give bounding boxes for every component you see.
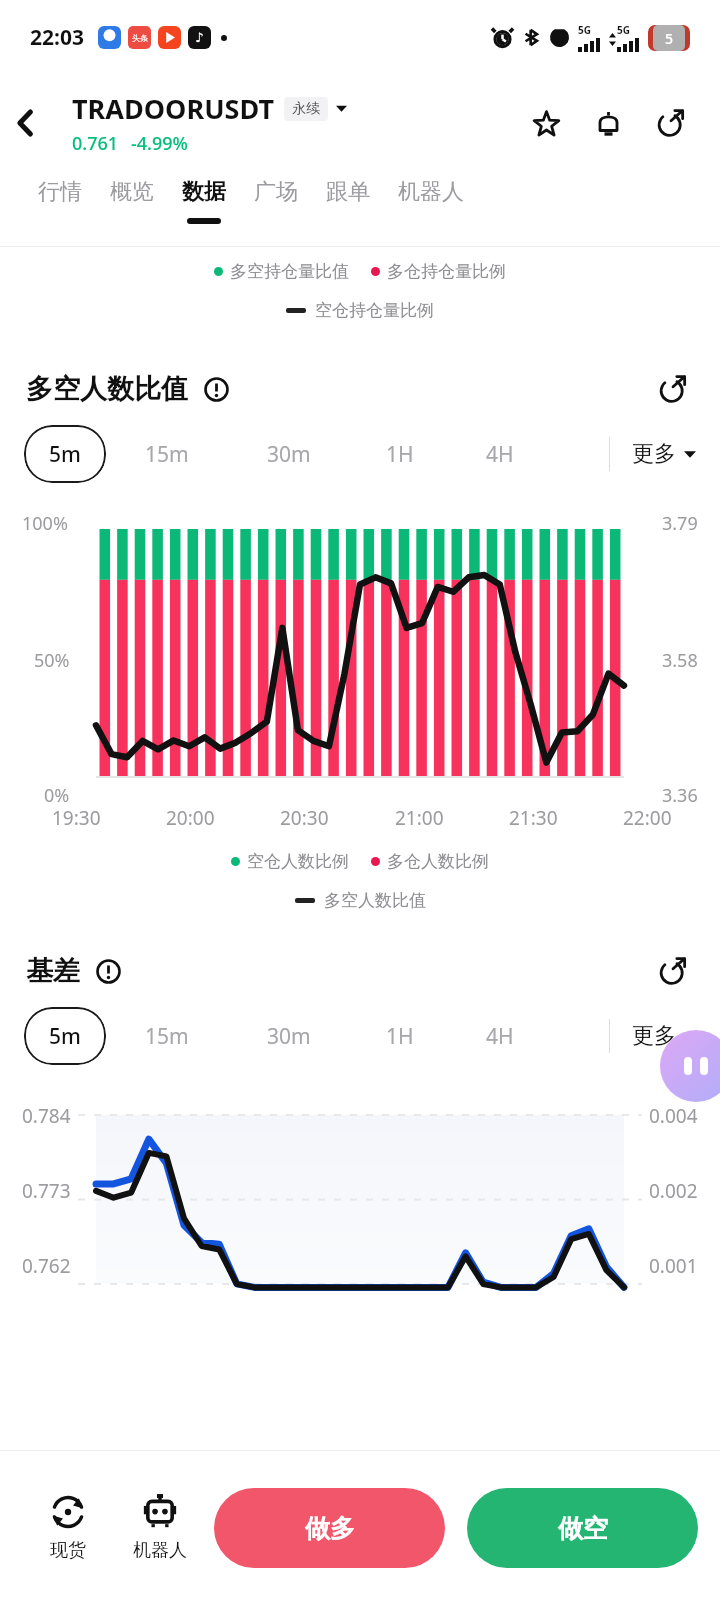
button[interactable]: 更多 (610, 1022, 696, 1050)
button[interactable]: 做空 (467, 1488, 698, 1568)
button[interactable]: 4H (450, 1007, 550, 1065)
button[interactable]: Share (646, 99, 694, 147)
button[interactable]: 数据 (168, 178, 240, 224)
button[interactable]: Assistant (660, 1030, 720, 1102)
button[interactable]: 概览 (96, 178, 168, 218)
staticText: 5m (49, 1022, 81, 1051)
button[interactable]: Info (200, 373, 232, 405)
staticText: 更多 (632, 440, 676, 468)
staticText: 0.001 (649, 1253, 698, 1279)
staticText: 21:00 (395, 805, 444, 831)
staticText: 空仓持仓量比例 (315, 300, 434, 321)
staticText: 现货 (50, 1539, 86, 1562)
button[interactable]: Expand (336, 103, 347, 114)
button[interactable]: 做多 (214, 1488, 445, 1568)
staticText: 20:30 (280, 805, 329, 831)
staticText: 15m (145, 440, 189, 469)
staticText: 跟单 (326, 178, 370, 206)
staticText: 多空人数比值 (26, 372, 188, 406)
button[interactable]: 15m (106, 425, 228, 483)
button[interactable]: Favorite (522, 99, 570, 147)
staticText: 15m (145, 1022, 189, 1051)
staticText: 30m (267, 440, 311, 469)
staticText: 30m (267, 1022, 311, 1051)
staticText: 1H (386, 440, 414, 469)
button[interactable]: 现货 (22, 1493, 114, 1562)
staticText: 多空人数比值 (324, 890, 426, 911)
staticText: 多仓人数比例 (387, 851, 489, 872)
staticText: 多空持仓量比值 (230, 261, 349, 282)
staticText: 5m (49, 440, 81, 469)
staticText: ♪ (195, 30, 204, 45)
button[interactable]: 机器人 (114, 1493, 206, 1562)
button[interactable]: 15m (106, 1007, 228, 1065)
button[interactable]: Alerts (584, 99, 632, 147)
button[interactable]: 跟单 (312, 178, 384, 218)
staticText: 3.36 (662, 783, 698, 808)
staticText: 0.773 (22, 1178, 71, 1204)
button[interactable]: 更多 (610, 440, 696, 468)
staticText: 5G (578, 23, 591, 37)
staticText: 更多 (632, 1022, 676, 1050)
staticText: 20:00 (166, 805, 215, 831)
button[interactable]: 永续 (292, 100, 320, 118)
staticText: 数据 (182, 178, 226, 206)
staticText: 5 (665, 29, 674, 48)
staticText: 1H (386, 1022, 414, 1051)
button[interactable]: Expand chart (650, 949, 694, 993)
staticText: 多仓持仓量比例 (387, 261, 506, 282)
button[interactable]: 5m (24, 1007, 106, 1065)
staticText: 3.58 (662, 648, 698, 673)
staticText: 22:00 (623, 805, 672, 831)
button[interactable]: 机器人 (384, 178, 478, 218)
button[interactable]: 行情 (24, 178, 96, 218)
staticText: 空仓人数比例 (247, 851, 349, 872)
staticText: -4.99% (131, 131, 188, 156)
staticText: 21:30 (509, 805, 558, 831)
button[interactable]: 广场 (240, 178, 312, 218)
staticText: 0.002 (649, 1178, 698, 1204)
staticText: 0% (44, 783, 70, 808)
staticText: 做空 (558, 1513, 608, 1544)
button[interactable]: 30m (228, 425, 350, 483)
button[interactable]: 30m (228, 1007, 350, 1065)
button[interactable]: 4H (450, 425, 550, 483)
staticText: 0.784 (22, 1103, 71, 1129)
staticText: 0.004 (649, 1103, 698, 1129)
button[interactable]: 1H (350, 1007, 450, 1065)
button[interactable]: Info (92, 955, 124, 987)
staticText: 概览 (110, 178, 154, 206)
staticText: 100% (22, 511, 68, 536)
button[interactable]: Back (0, 97, 52, 149)
staticText: 头条 (132, 33, 148, 43)
staticText: 4H (486, 1022, 514, 1051)
staticText: 行情 (38, 178, 82, 206)
staticText: 5G (617, 23, 630, 37)
staticText: 19:30 (52, 805, 101, 831)
staticText: 4H (486, 440, 514, 469)
button[interactable]: 1H (350, 425, 450, 483)
staticText: 0.761 (72, 131, 119, 156)
staticText: 机器人 (133, 1539, 187, 1562)
staticText: 3.79 (662, 511, 698, 536)
button[interactable]: Expand chart (650, 367, 694, 411)
button[interactable]: 5m (24, 425, 106, 483)
staticText: 22:03 (30, 23, 84, 52)
staticText: TRADOORUSDT (72, 90, 274, 127)
staticText: 基差 (26, 954, 80, 988)
staticText: 永续 (292, 100, 320, 118)
staticText: 广场 (254, 178, 298, 206)
staticText: 机器人 (398, 178, 464, 206)
staticText: 做多 (305, 1513, 355, 1544)
staticText: 50% (34, 648, 70, 673)
staticText: 0.762 (22, 1253, 71, 1279)
